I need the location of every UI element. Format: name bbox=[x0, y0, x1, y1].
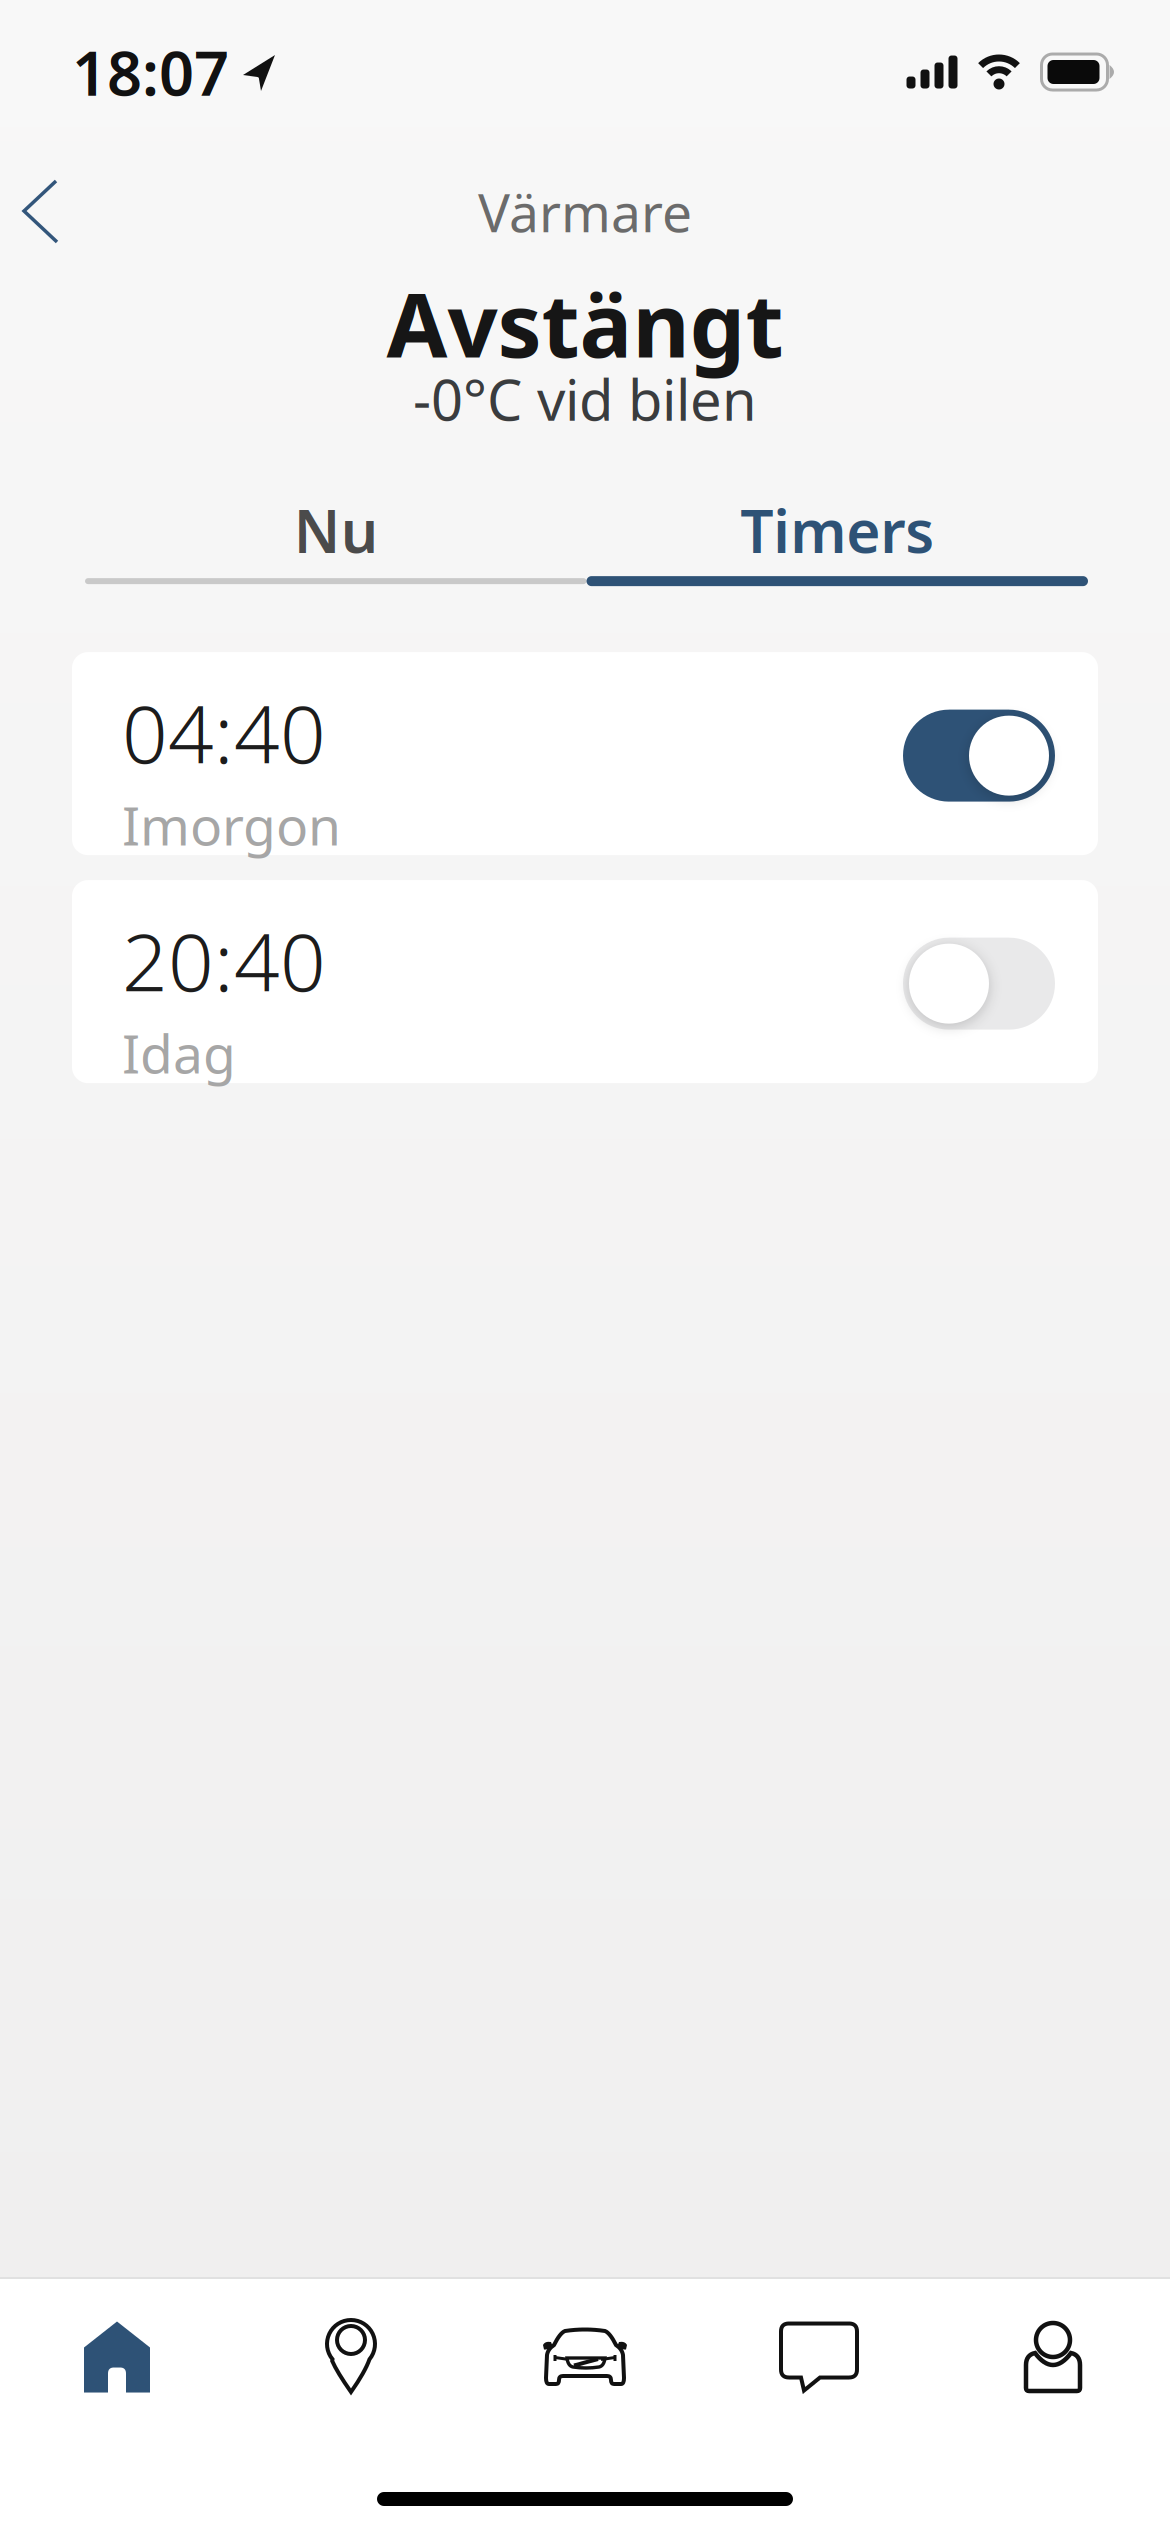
button[interactable]: Timers bbox=[586, 491, 1088, 586]
staticText: 04:40 bbox=[122, 679, 326, 785]
button[interactable]: Timer 04:40 on bbox=[903, 710, 1055, 802]
button[interactable]: 04:40 bbox=[72, 652, 1098, 855]
staticText: Värmare bbox=[478, 176, 692, 247]
staticText: -0°C vid bilen bbox=[413, 362, 757, 436]
button[interactable]: Messages bbox=[702, 2321, 936, 2393]
button[interactable]: Back bbox=[23, 180, 63, 243]
staticText: 20:40 bbox=[122, 907, 326, 1013]
staticText: Nu bbox=[294, 491, 378, 569]
staticText: 18:07 bbox=[72, 31, 229, 113]
button[interactable]: 20:40 bbox=[72, 880, 1098, 1083]
button[interactable]: Nu bbox=[85, 491, 586, 586]
button[interactable]: Profile bbox=[936, 2321, 1170, 2393]
button[interactable]: Timer 20:40 off bbox=[903, 938, 1055, 1030]
staticText: Imorgon bbox=[122, 789, 341, 860]
button[interactable]: Location bbox=[234, 2321, 468, 2393]
staticText: Avstängt bbox=[386, 265, 783, 382]
staticText: Timers bbox=[740, 491, 934, 569]
button[interactable]: Home bbox=[0, 2321, 234, 2393]
button[interactable]: Car bbox=[468, 2321, 702, 2393]
staticText: Idag bbox=[122, 1017, 236, 1088]
